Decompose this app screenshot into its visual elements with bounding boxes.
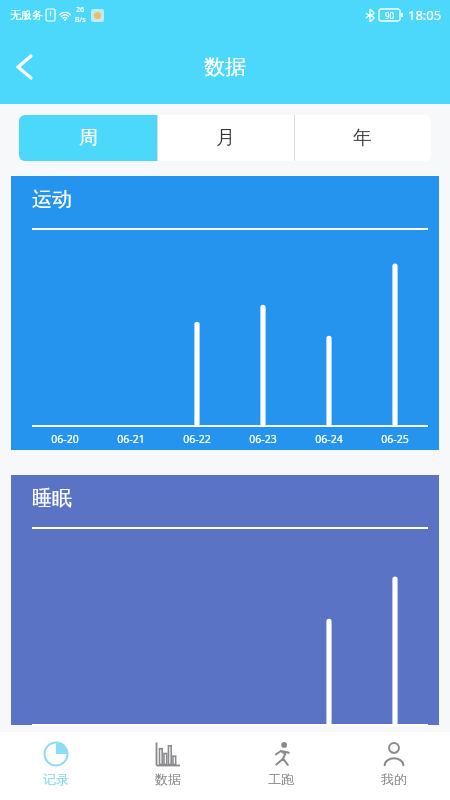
staticText: 记录 bbox=[43, 771, 69, 787]
staticText: 06-23 bbox=[230, 432, 296, 446]
staticText: B/s bbox=[75, 15, 86, 25]
staticText: 工跑 bbox=[268, 771, 294, 787]
button[interactable]: 月 bbox=[157, 115, 294, 161]
staticText: 我的 bbox=[381, 771, 407, 787]
staticText: 无服务 bbox=[10, 8, 43, 22]
staticText: 数据 bbox=[155, 771, 181, 787]
staticText: 06-22 bbox=[164, 432, 230, 446]
button[interactable]: 记录 bbox=[0, 732, 112, 800]
button[interactable]: 工跑 bbox=[224, 732, 337, 800]
staticText: 年 bbox=[353, 126, 372, 150]
staticText: 睡眠 bbox=[32, 486, 72, 511]
button[interactable]: 我的 bbox=[337, 732, 450, 800]
staticText: 26 bbox=[76, 5, 85, 15]
staticText: 18:05 bbox=[408, 6, 442, 24]
button[interactable]: 周 bbox=[19, 115, 157, 161]
staticText: 数据 bbox=[204, 54, 246, 80]
button[interactable]: Back bbox=[0, 43, 48, 91]
staticText: 运动 bbox=[32, 187, 72, 212]
button[interactable]: 睡眠 bbox=[11, 475, 439, 725]
button[interactable]: 运动 bbox=[11, 176, 439, 450]
staticText: 月 bbox=[216, 126, 235, 150]
staticText: 06-25 bbox=[362, 432, 428, 446]
staticText: 06-24 bbox=[296, 432, 362, 446]
button[interactable]: 年 bbox=[294, 115, 431, 161]
staticText: 06-20 bbox=[32, 432, 98, 446]
button[interactable]: 数据 bbox=[112, 732, 224, 800]
staticText: 周 bbox=[79, 126, 98, 150]
staticText: 90 bbox=[385, 10, 395, 21]
staticText: 06-21 bbox=[98, 432, 164, 446]
